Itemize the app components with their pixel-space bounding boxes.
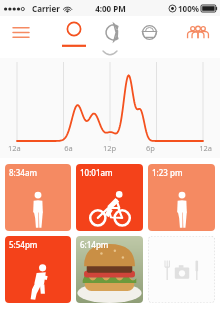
- staticText: 5:54pm: [9, 239, 38, 250]
- staticText: 100%: [178, 3, 199, 14]
- button[interactable]: 5:54pm: [5, 236, 71, 303]
- staticText: Carrier: [32, 3, 60, 14]
- staticText: 12a: [171, 143, 212, 153]
- staticText: 6:14pm: [80, 239, 109, 250]
- staticText: 12p: [89, 143, 130, 153]
- staticText: 6p: [130, 143, 171, 153]
- button[interactable]: Activity: [56, 17, 92, 47]
- button[interactable]: Meal photo: [76, 236, 143, 303]
- staticText: 1:23 pm: [152, 167, 183, 178]
- staticText: 12a: [8, 143, 48, 153]
- button[interactable]: Menu: [8, 19, 34, 45]
- button[interactable]: 10:01am: [76, 164, 143, 231]
- button[interactable]: 8:34am: [5, 164, 71, 231]
- staticText: 8:34am: [9, 167, 38, 178]
- button[interactable]: Sleep: [98, 17, 128, 47]
- staticText: 10:01am: [80, 167, 113, 178]
- button[interactable]: Expand: [0, 48, 220, 58]
- button[interactable]: Add meal photo: [148, 236, 215, 303]
- staticText: 6a: [48, 143, 89, 153]
- button[interactable]: 1:23 pm: [148, 164, 215, 231]
- staticText: 4:00 PM: [95, 3, 126, 14]
- button[interactable]: Food: [134, 17, 164, 47]
- button[interactable]: Friends: [184, 18, 212, 46]
